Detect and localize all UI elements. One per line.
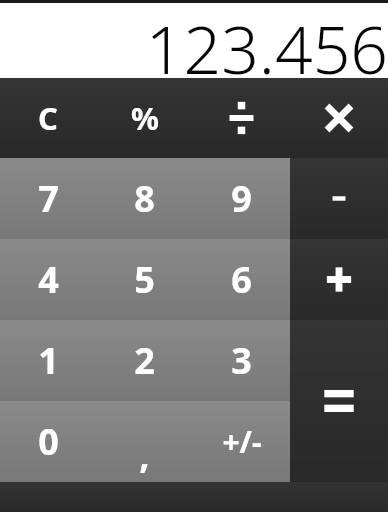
- staticText: 123.456: [145, 3, 388, 78]
- button[interactable]: 3: [193, 320, 290, 401]
- staticText: 1: [38, 336, 59, 385]
- button[interactable]: Divide: [193, 78, 290, 158]
- staticText: C: [38, 97, 58, 139]
- button[interactable]: 7: [0, 158, 96, 239]
- staticText: 5: [134, 255, 155, 304]
- staticText: ,: [139, 430, 150, 479]
- staticText: +/-: [222, 421, 262, 462]
- staticText: 9: [231, 174, 252, 223]
- button[interactable]: 4: [0, 239, 96, 320]
- button[interactable]: 2: [96, 320, 193, 401]
- button[interactable]: C: [0, 78, 96, 158]
- staticText: 2: [134, 336, 155, 385]
- staticText: 8: [134, 174, 155, 223]
- button[interactable]: 9: [193, 158, 290, 239]
- button[interactable]: 5: [96, 239, 193, 320]
- button[interactable]: 6: [193, 239, 290, 320]
- button[interactable]: Add: [290, 239, 388, 320]
- button[interactable]: ,: [96, 401, 193, 482]
- button[interactable]: Subtract: [290, 158, 388, 239]
- staticText: 3: [231, 336, 252, 385]
- button[interactable]: 0: [0, 401, 96, 482]
- button[interactable]: Equals: [290, 320, 388, 482]
- staticText: 0: [38, 417, 59, 466]
- button[interactable]: 8: [96, 158, 193, 239]
- button[interactable]: %: [96, 78, 193, 158]
- staticText: 6: [231, 255, 252, 304]
- staticText: 7: [38, 174, 59, 223]
- staticText: 4: [38, 255, 59, 304]
- button[interactable]: +/-: [193, 401, 290, 482]
- button[interactable]: Multiply: [290, 78, 388, 158]
- staticText: %: [131, 97, 159, 139]
- button[interactable]: 1: [0, 320, 96, 401]
